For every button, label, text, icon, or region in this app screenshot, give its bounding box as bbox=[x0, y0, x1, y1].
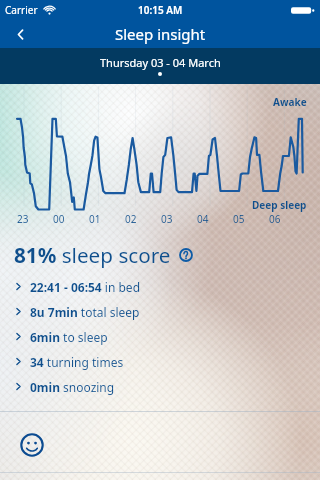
staticText: 34 turning times bbox=[30, 354, 124, 370]
button[interactable]: 8u 7min total sleep bbox=[0, 299, 320, 324]
staticText: 00 bbox=[53, 212, 65, 226]
staticText: 81% sleep score bbox=[14, 241, 171, 269]
button[interactable]: Thursday 03 - 04 March bbox=[0, 48, 320, 84]
staticText: Deep sleep bbox=[252, 198, 307, 212]
button[interactable]: Mood bbox=[20, 433, 44, 457]
button[interactable]: 22:41 - 06:54 in bed bbox=[0, 274, 320, 299]
staticText: 8u 7min total sleep bbox=[30, 304, 140, 320]
button[interactable]: 34 turning times bbox=[0, 349, 320, 374]
staticText: 10:15 AM bbox=[138, 3, 183, 17]
staticText: 03 bbox=[161, 212, 173, 226]
staticText: 02 bbox=[125, 212, 137, 226]
staticText: Thursday 03 - 04 March bbox=[100, 55, 221, 70]
staticText: 6min to sleep bbox=[30, 329, 108, 345]
staticText: 23 bbox=[17, 212, 29, 226]
button[interactable]: 0min snoozing bbox=[0, 374, 320, 399]
staticText: 01 bbox=[89, 212, 101, 226]
staticText: 22:41 - 06:54 in bed bbox=[30, 279, 141, 295]
staticText: 06 bbox=[269, 212, 281, 226]
button[interactable]: 81% sleep score bbox=[0, 235, 320, 274]
staticText: Awake bbox=[273, 95, 307, 109]
button[interactable]: Help bbox=[179, 248, 193, 262]
staticText: Sleep insight bbox=[115, 24, 206, 44]
button[interactable]: 6min to sleep bbox=[0, 324, 320, 349]
staticText: Carrier bbox=[5, 3, 38, 17]
button[interactable]: Back bbox=[0, 20, 40, 48]
staticText: 04 bbox=[197, 212, 209, 226]
staticText: 0min snoozing bbox=[30, 379, 115, 395]
staticText: 05 bbox=[233, 212, 245, 226]
